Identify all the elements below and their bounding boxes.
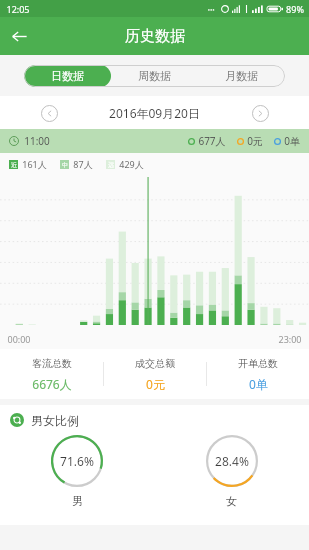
- staticText: 周数据: [138, 69, 171, 83]
- button[interactable]: 日数据: [24, 65, 111, 87]
- staticText: 近: [11, 161, 17, 169]
- button[interactable]: Back: [0, 17, 38, 55]
- button[interactable]: Next day: [249, 102, 271, 124]
- staticText: 87人: [73, 158, 93, 170]
- button[interactable]: 开单总数: [207, 349, 309, 399]
- staticText: 客流总数: [32, 357, 72, 370]
- button[interactable]: 周数据: [111, 65, 198, 87]
- staticText: 6676人: [32, 376, 72, 392]
- staticText: 开单总数: [238, 357, 278, 370]
- button[interactable]: 28.4%: [154, 435, 309, 508]
- staticText: 677人: [198, 134, 226, 148]
- button[interactable]: Previous day: [38, 102, 60, 124]
- button[interactable]: 客流总数: [0, 349, 103, 399]
- staticText: 2016年09月20日: [109, 105, 200, 121]
- staticText: 男女比例: [31, 413, 79, 428]
- staticText: 89%: [286, 3, 304, 15]
- staticText: 12:05: [6, 3, 30, 15]
- staticText: 23:00: [278, 333, 302, 345]
- staticText: 11:00: [24, 134, 50, 148]
- staticText: 远: [108, 161, 114, 169]
- button[interactable]: 成交总额: [104, 349, 206, 399]
- staticText: 00:00: [7, 333, 31, 345]
- staticText: 日数据: [51, 69, 84, 83]
- staticText: 女: [226, 494, 237, 508]
- staticText: 中: [62, 161, 68, 169]
- staticText: 28.4%: [215, 453, 249, 469]
- button[interactable]: 71.6%: [0, 435, 154, 508]
- staticText: 男: [72, 494, 83, 508]
- staticText: 71.6%: [60, 453, 94, 469]
- staticText: 0元: [247, 134, 263, 148]
- staticText: 0元: [146, 376, 165, 392]
- staticText: 月数据: [225, 69, 258, 83]
- staticText: 429人: [119, 158, 144, 170]
- staticText: 成交总额: [135, 357, 175, 370]
- staticText: 161人: [22, 158, 47, 170]
- staticText: 0单: [284, 134, 300, 148]
- staticText: 0单: [249, 376, 268, 392]
- button[interactable]: 月数据: [198, 65, 285, 87]
- staticText: 历史数据: [125, 27, 185, 46]
